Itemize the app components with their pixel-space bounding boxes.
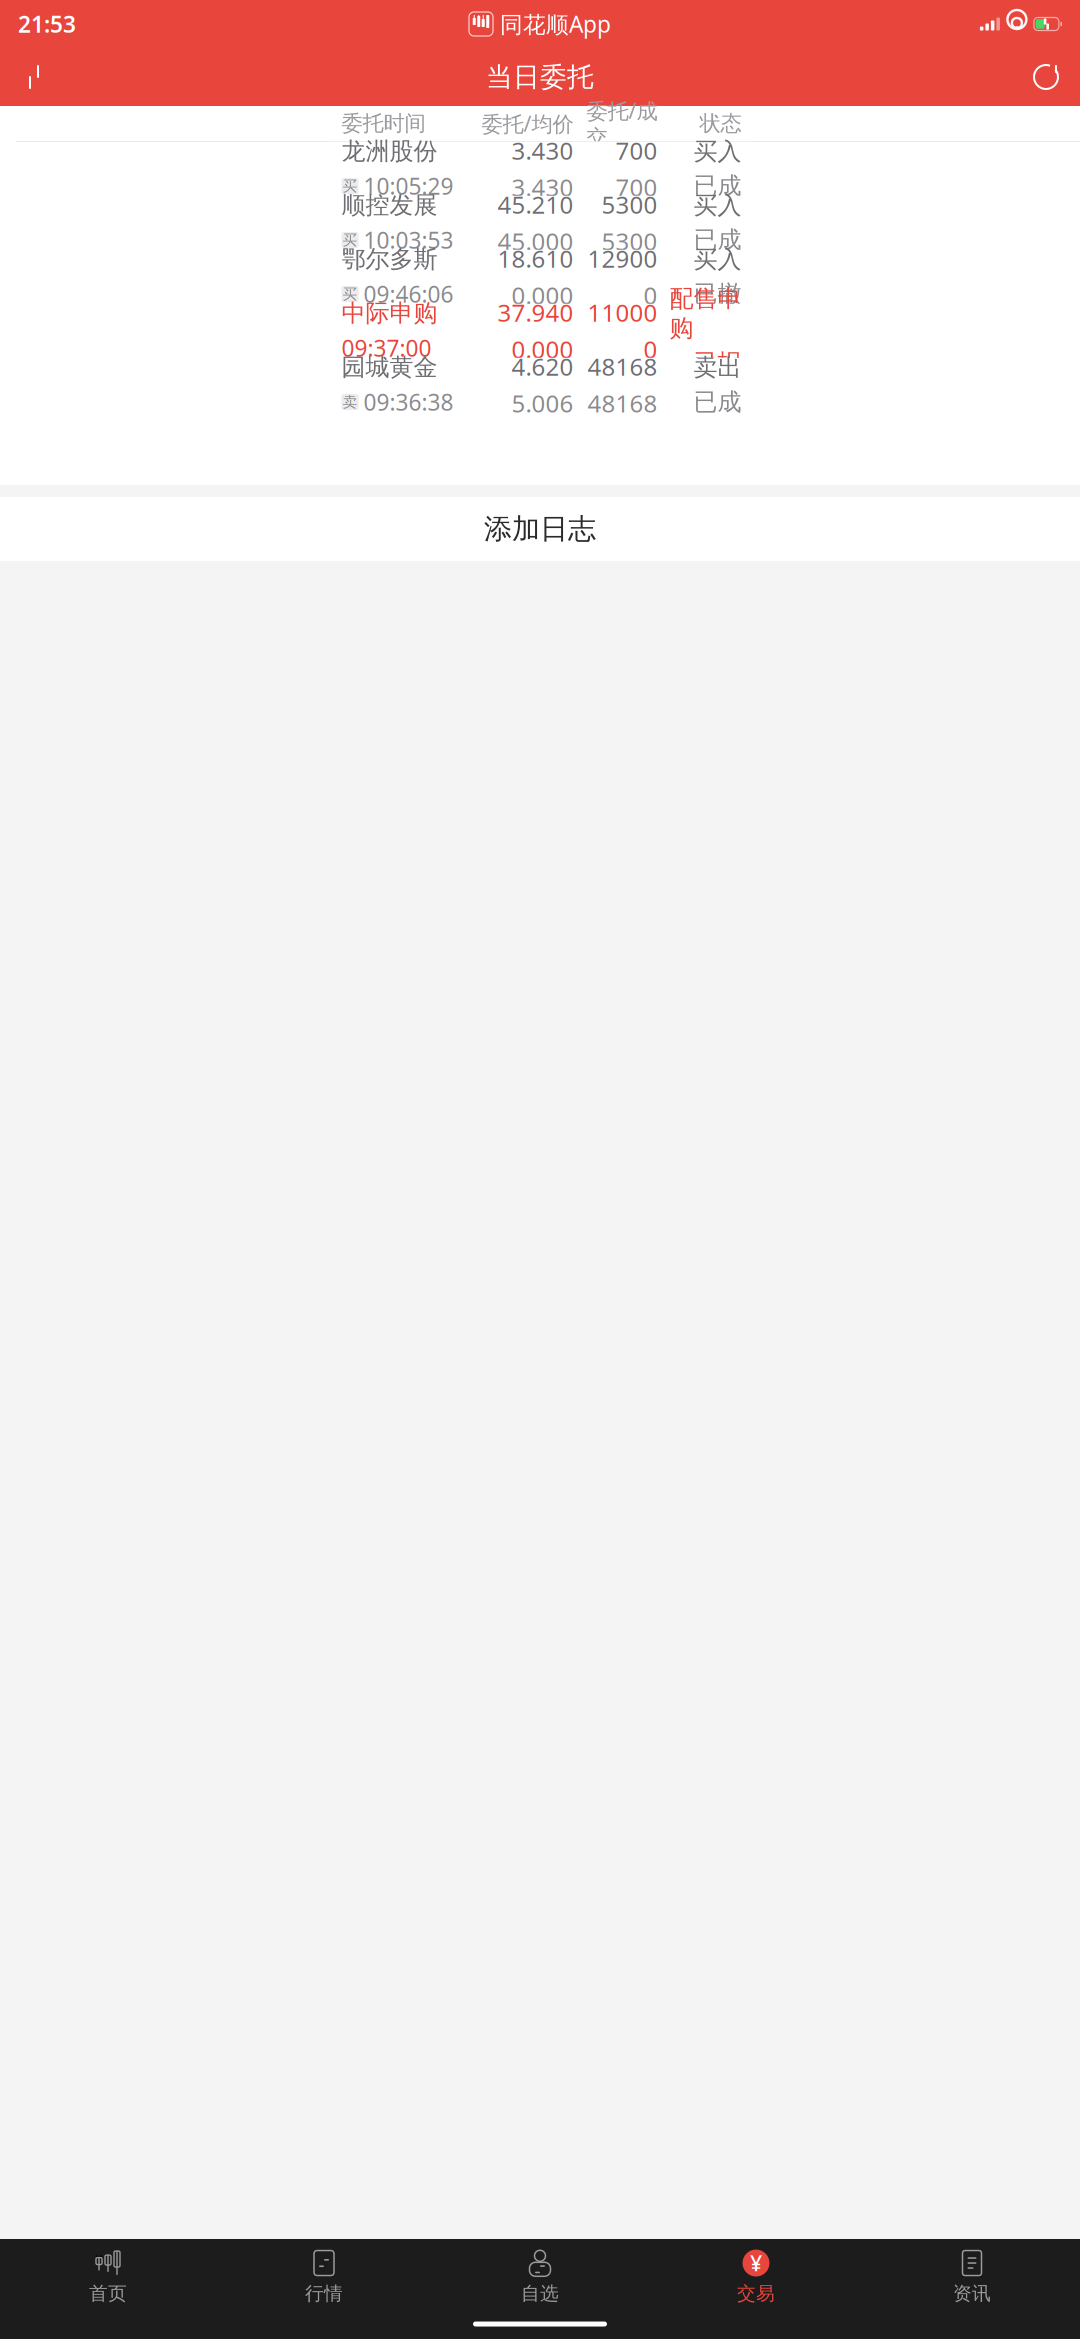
staticText: 买 — [342, 231, 357, 249]
staticText: 卖 — [342, 393, 357, 411]
button[interactable]: 中际申购 — [325, 304, 754, 358]
staticText: 3.430 — [511, 134, 573, 166]
staticText: 09:37:00 — [341, 333, 431, 363]
staticText: 买 — [342, 177, 357, 195]
staticText: 48168 — [587, 387, 657, 419]
staticText: 园城黄金 — [341, 352, 437, 382]
staticText: 鄂尔多斯 — [341, 244, 437, 274]
staticText: 已撤 — [693, 279, 741, 309]
button[interactable]: 园城黄金 — [325, 358, 754, 412]
staticText: 委托/成交 — [586, 96, 657, 151]
staticText: 5300 — [601, 188, 657, 220]
staticText: 委托/均价 — [481, 109, 573, 138]
button[interactable]: 首页 — [0, 2245, 216, 2309]
staticText: 龙洲股份 — [341, 136, 437, 166]
staticText: 0 — [643, 279, 657, 311]
staticText: ¥ — [750, 2249, 762, 2277]
staticText: 已报 — [693, 348, 741, 377]
staticText: 自选 — [521, 2282, 559, 2305]
staticText: 买入 — [693, 191, 741, 220]
staticText: 21:53 — [18, 9, 76, 39]
staticText: 10:03:53 — [363, 225, 453, 255]
staticText: 买入 — [693, 245, 741, 274]
staticText: 11000 — [587, 296, 657, 328]
staticText: 5300 — [601, 225, 657, 257]
staticText: 45.210 — [497, 188, 573, 220]
staticText: 买入 — [693, 137, 741, 166]
staticText: 已成 — [693, 171, 741, 201]
staticText: 中际申购 — [341, 298, 437, 328]
button[interactable]: 行情 — [216, 2245, 432, 2309]
staticText: 委托时间 — [341, 110, 425, 137]
staticText: 当日委托 — [486, 61, 594, 93]
staticText: 卖出 — [693, 353, 741, 382]
staticText: 18.610 — [497, 242, 573, 274]
staticText: 0 — [643, 333, 657, 365]
staticText: 配售申购 — [669, 284, 741, 343]
staticText: 顺控发展 — [341, 190, 437, 220]
staticText: 交易 — [737, 2282, 775, 2305]
staticText: 700 — [615, 171, 657, 203]
staticText: 已成 — [693, 387, 741, 417]
staticText: 45.000 — [497, 225, 573, 257]
staticText: 48168 — [587, 350, 657, 382]
staticText: 首页 — [89, 2282, 127, 2305]
button[interactable]: 资讯 — [864, 2245, 1080, 2309]
staticText: 0.000 — [511, 333, 573, 365]
button[interactable]: 返回 — [6, 55, 62, 99]
button[interactable]: 龙洲股份 — [325, 142, 754, 196]
staticText: 09:36:38 — [363, 387, 453, 417]
button[interactable]: 顺控发展 — [325, 196, 754, 250]
staticText: 资讯 — [953, 2282, 991, 2305]
button[interactable]: 添加日志 — [0, 497, 1080, 561]
staticText: 同花顺App — [500, 9, 611, 39]
staticText: 行情 — [305, 2282, 343, 2305]
staticText: 0.000 — [511, 279, 573, 311]
staticText: 买 — [342, 285, 357, 303]
staticText: 09:46:06 — [363, 279, 453, 309]
staticText: 10:05:29 — [363, 171, 453, 201]
staticText: 状态 — [699, 110, 741, 137]
staticText: 37.940 — [497, 296, 573, 328]
staticText: 已成 — [693, 225, 741, 255]
staticText: 添加日志 — [484, 512, 596, 546]
button[interactable]: 自选 — [432, 2245, 648, 2309]
button[interactable]: 刷新 — [1018, 55, 1074, 99]
staticText: 12900 — [587, 242, 657, 274]
button[interactable]: ¥ — [648, 2245, 864, 2309]
staticText: 4.620 — [511, 350, 573, 382]
button[interactable]: 鄂尔多斯 — [325, 250, 754, 304]
staticText: 700 — [615, 134, 657, 166]
staticText: 5.006 — [511, 387, 573, 419]
staticText: 3.430 — [511, 171, 573, 203]
